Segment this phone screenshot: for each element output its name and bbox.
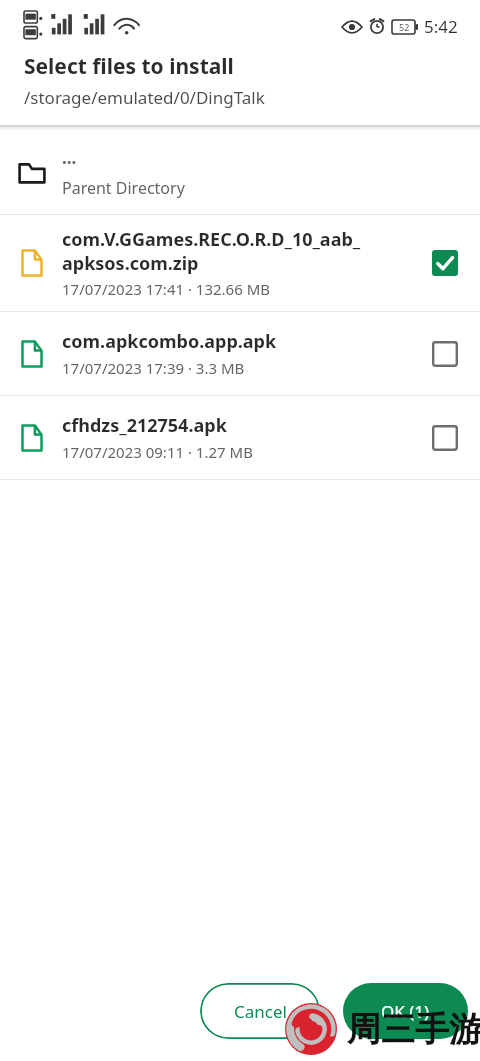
staticText: 17/07/2023 17:39 · 3.3 MB [62,358,245,378]
button[interactable]: Selected [428,246,462,280]
button[interactable]: Not selected [428,421,462,455]
staticText: /storage/emulated/0/DingTalk [24,86,265,109]
button[interactable]: com.V.GGames.REC.O.R.D_10_aab_ apksos.co… [0,215,480,311]
staticText: 5:42 [424,15,458,38]
staticText: 周三手游网 [347,1008,480,1051]
button[interactable]: Cancel [200,983,320,1039]
staticText: com.V.GGames.REC.O.R.D_10_aab_ apksos.co… [62,227,361,275]
staticText: ... [62,146,77,169]
button[interactable]: cfhdzs_212754.apk [0,396,480,479]
button[interactable]: Not selected [428,337,462,371]
staticText: cfhdzs_212754.apk [62,413,227,438]
staticText: com.apkcombo.app.apk [62,329,277,354]
staticText: Parent Directory [62,177,185,199]
staticText: 17/07/2023 17:41 · 132.66 MB [62,279,271,299]
staticText: OK (1) [381,1000,430,1023]
staticText: Cancel [234,1000,287,1023]
staticText: Select files to install [24,52,234,81]
staticText: 17/07/2023 09:11 · 1.27 MB [62,442,253,462]
staticText: 52 [399,21,410,33]
button[interactable]: com.apkcombo.app.apk [0,312,480,395]
button[interactable]: ... [0,131,480,214]
button[interactable]: OK (1) [343,983,468,1039]
